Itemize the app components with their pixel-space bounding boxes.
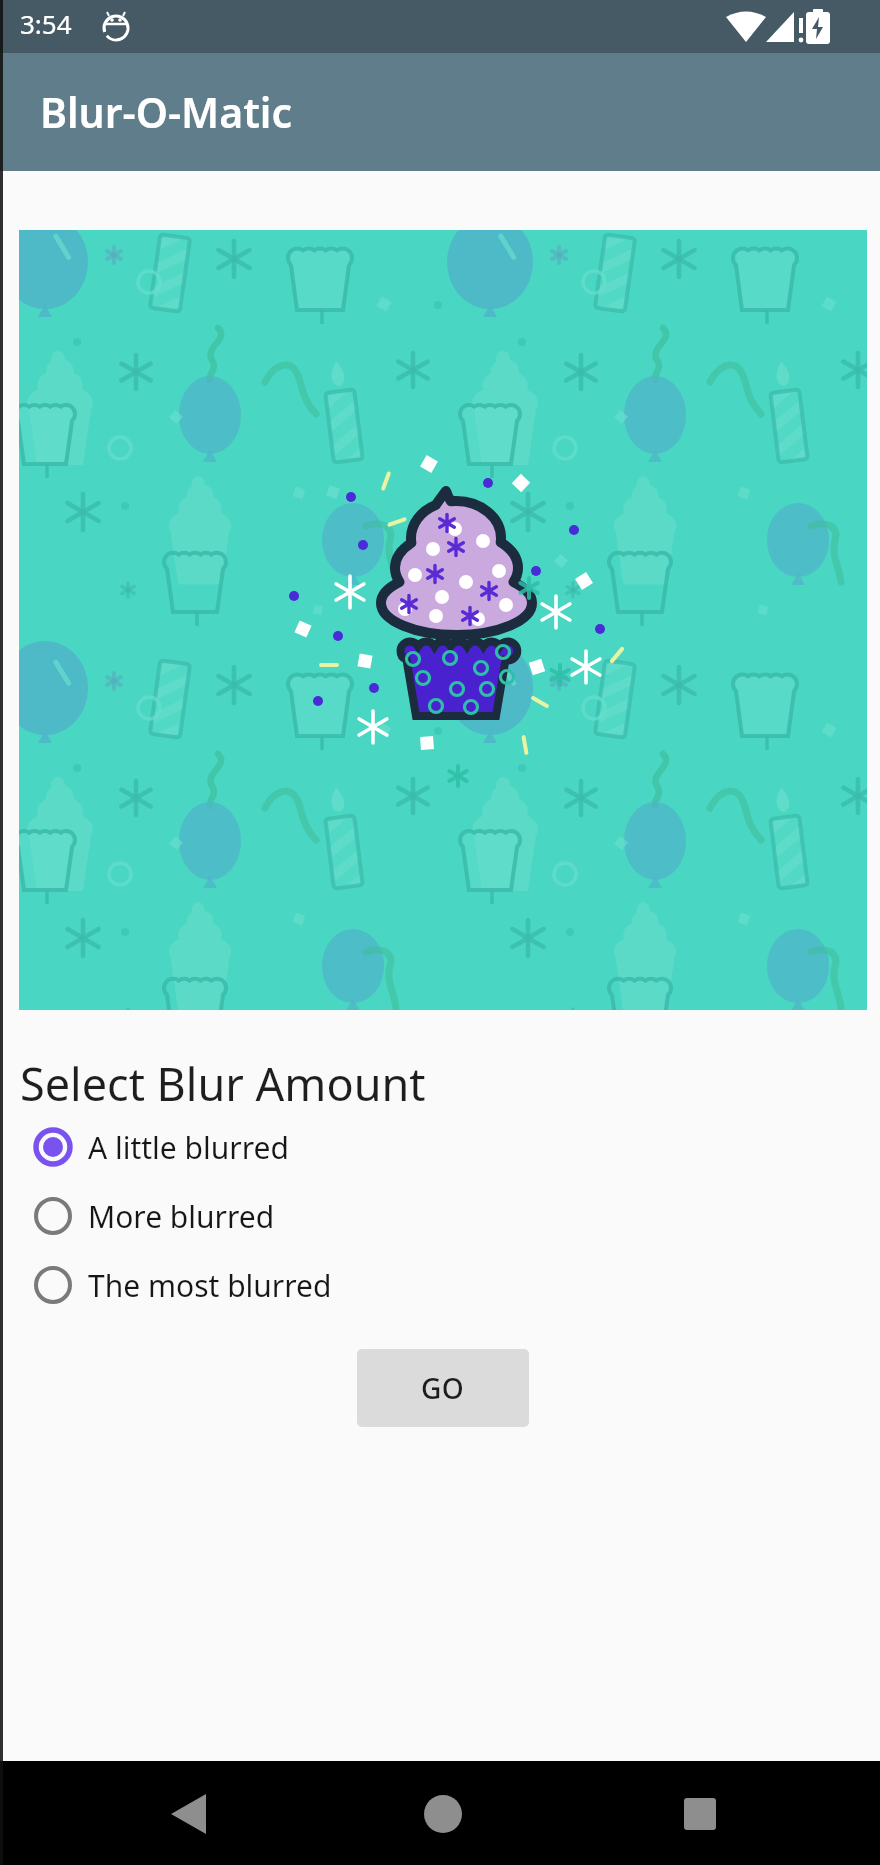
staticText: More blurred (88, 1196, 275, 1237)
button[interactable] (677, 1791, 723, 1837)
button[interactable] (155, 1791, 221, 1837)
button[interactable]: GO (357, 1349, 529, 1427)
staticText: Select Blur Amount (20, 1053, 426, 1114)
staticText: 3:54 (20, 6, 72, 41)
staticText: GO (421, 1369, 465, 1407)
staticText: A little blurred (88, 1127, 289, 1168)
button[interactable]: A little blurred (33, 1115, 289, 1179)
button[interactable]: More blurred (33, 1184, 275, 1248)
staticText: The most blurred (88, 1265, 332, 1306)
staticText: Blur-O-Matic (40, 84, 292, 140)
button[interactable]: The most blurred (33, 1253, 332, 1317)
button[interactable] (420, 1791, 466, 1837)
